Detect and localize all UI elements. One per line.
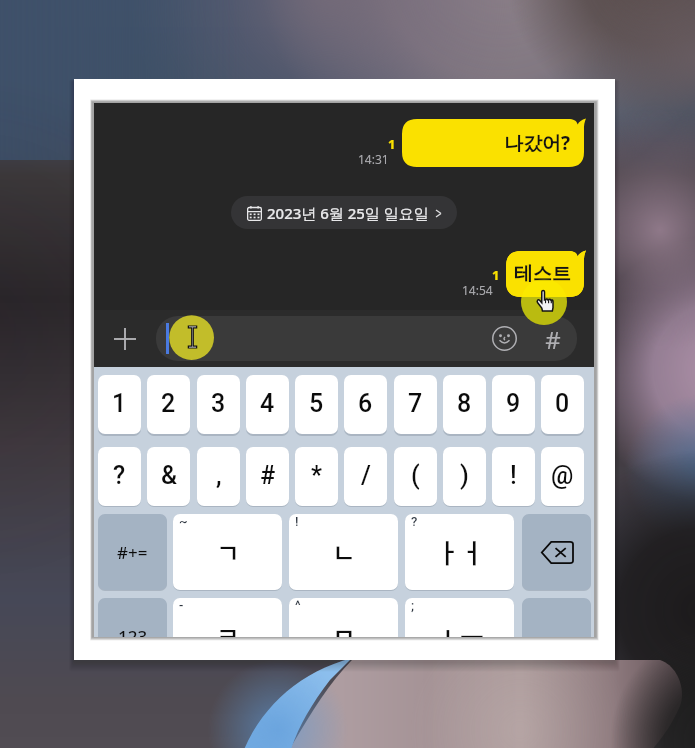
button[interactable]: ; [405,598,514,637]
staticText: ! [510,461,517,490]
staticText: ㄹ [216,617,240,637]
staticText: ( [411,461,420,490]
button[interactable]: 7 [394,375,437,434]
staticText: 8 [457,389,472,418]
staticText: , [216,461,222,490]
button[interactable]: ! [289,514,398,590]
button[interactable]: ) [443,447,486,506]
staticText: - [179,598,184,613]
staticText: 5 [309,389,324,418]
button[interactable]: * [295,447,338,506]
staticText: #+= [117,541,148,564]
staticText: 1 [492,266,500,284]
staticText: 2 [161,389,176,418]
button[interactable]: 0 [541,375,584,434]
staticText: ㄱ [216,533,240,571]
button[interactable]: ( [394,447,437,506]
button[interactable]: & [147,447,190,506]
staticText: # [545,323,561,351]
staticText: 6 [358,389,373,418]
staticText: 7 [408,389,423,418]
button[interactable]: Backspace [522,514,591,590]
button[interactable]: 나갔어? [402,119,584,167]
button[interactable]: # [246,447,289,506]
staticText: ; [411,598,415,613]
staticText: @ [551,461,574,490]
button[interactable]: / [344,447,387,506]
staticText: 테스트 [514,262,571,286]
button[interactable] [156,316,577,361]
staticText: 1 [112,389,127,418]
staticText: 1 [388,135,396,153]
button[interactable]: 4 [246,375,289,434]
button[interactable]: 3 [197,375,240,434]
staticText: 나갔어? [504,130,571,156]
staticText: 14:54 [462,282,493,298]
button[interactable]: ? [98,447,141,506]
button[interactable]: @ [541,447,584,506]
button[interactable]: Add attachment [114,328,136,350]
button[interactable]: , [197,447,240,506]
button[interactable]: ? [405,514,514,590]
staticText: 14:31 [358,151,389,167]
button[interactable]: #+= [98,514,167,590]
button[interactable]: 6 [344,375,387,434]
staticText: ㅗㅡ [436,617,484,637]
button[interactable]: 1 [98,375,141,434]
staticText: 4 [260,389,275,418]
button[interactable]: Hashtag [539,323,567,351]
staticText: ㄴ [332,533,356,571]
staticText: 0 [555,389,570,418]
staticText: 3 [211,389,226,418]
staticText: * [311,461,323,490]
staticText: ! [295,514,299,529]
staticText: 2023년 6월 25일 일요일 [267,203,429,223]
button[interactable]: 2 [147,375,190,434]
staticText: ) [460,461,469,490]
staticText: & [161,461,177,490]
button[interactable]: ~ [173,514,282,590]
button[interactable]: 2023년 6월 25일 일요일 [231,196,457,229]
button[interactable]: ^ [289,598,398,637]
button[interactable]: 8 [443,375,486,434]
staticText: ^ [295,598,301,613]
staticText: ? [411,514,418,529]
staticText: ? [113,461,126,490]
staticText: 123 [118,625,148,637]
staticText: 테스트 [514,262,571,286]
staticText: ~ [179,514,188,529]
button[interactable]: - [173,598,282,637]
staticText: # [260,461,276,490]
button[interactable]: 123 [98,598,167,637]
staticText: 9 [506,389,521,418]
button[interactable]: 5 [295,375,338,434]
button[interactable]: 9 [492,375,535,434]
staticText: / [361,461,371,490]
button[interactable]: ! [492,447,535,506]
staticText: ㅁ [332,617,356,637]
staticText: ㅏㅓ [436,533,484,571]
button[interactable]: 테스트 [506,251,584,297]
button[interactable]: Emoji [492,326,517,351]
